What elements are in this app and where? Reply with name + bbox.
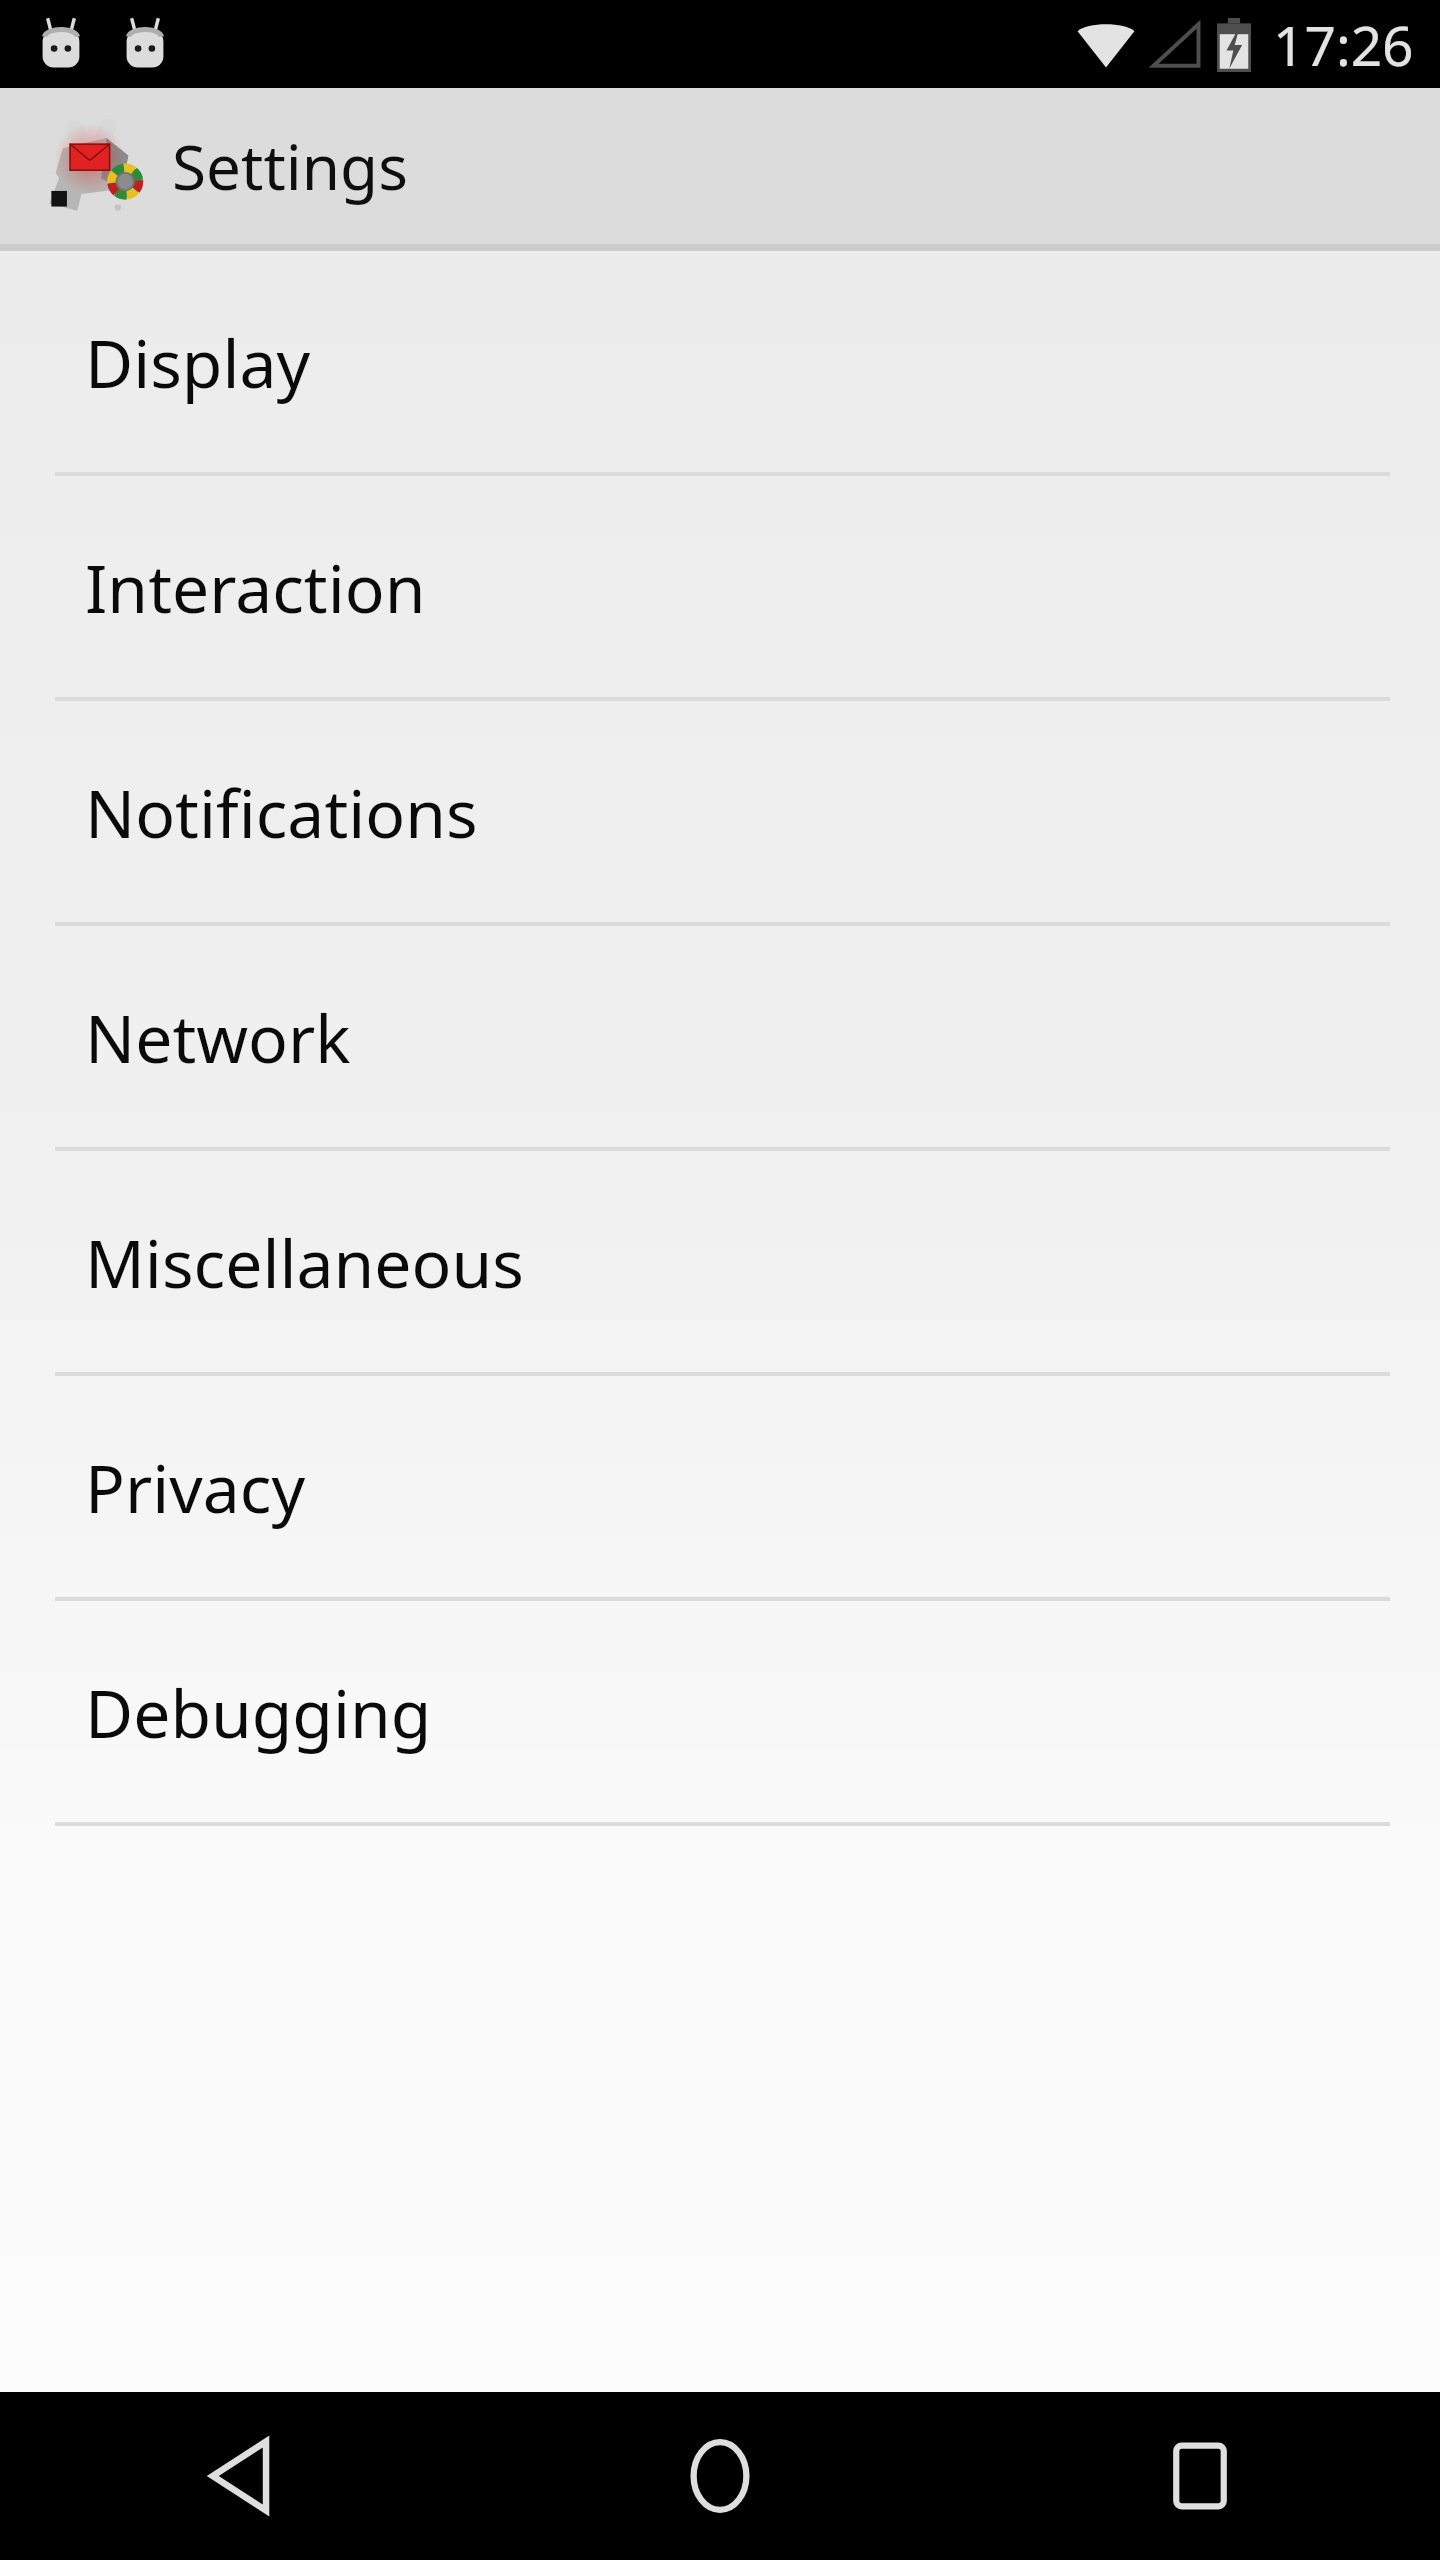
staticText: Debugging xyxy=(85,1667,432,1757)
button[interactable]: Recent apps xyxy=(960,2392,1440,2560)
button[interactable]: Home xyxy=(480,2392,960,2560)
button[interactable]: Privacy xyxy=(0,1376,1440,1601)
staticText: Notifications xyxy=(85,767,478,857)
button[interactable]: Notifications xyxy=(0,701,1440,926)
button[interactable]: Debugging xyxy=(0,1601,1440,1826)
staticText: Miscellaneous xyxy=(85,1217,524,1307)
staticText: Display xyxy=(85,317,311,407)
staticText: 17:26 xyxy=(1273,7,1414,82)
button[interactable]: Display xyxy=(0,251,1440,476)
button[interactable]: Network xyxy=(0,926,1440,1151)
staticText: Privacy xyxy=(85,1442,306,1532)
button[interactable]: Miscellaneous xyxy=(0,1151,1440,1376)
staticText: Settings xyxy=(172,124,408,208)
staticText: Network xyxy=(85,992,351,1082)
staticText: Interaction xyxy=(85,542,426,632)
button[interactable]: Back xyxy=(0,2392,480,2560)
button[interactable]: Interaction xyxy=(0,476,1440,701)
